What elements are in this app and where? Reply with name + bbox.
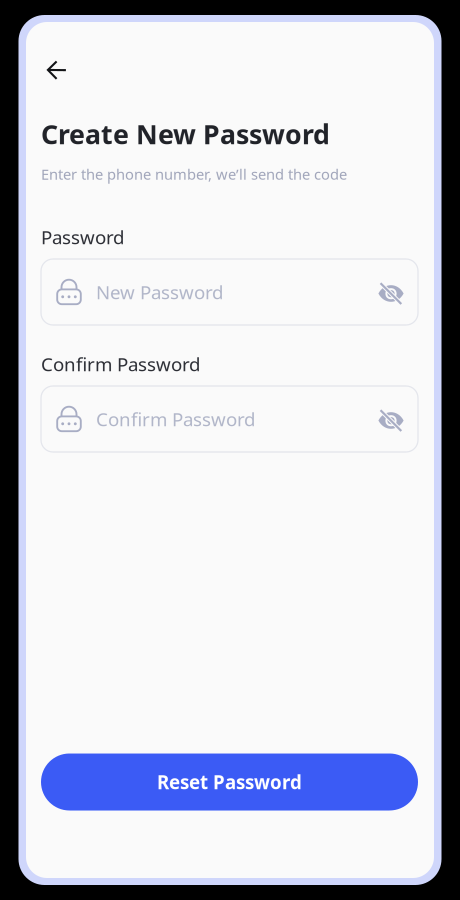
button[interactable]: Confirm Password [41, 386, 418, 452]
staticText: Create New Password [41, 116, 330, 152]
button[interactable]: New Password [41, 259, 418, 325]
button[interactable]: Reset Password [41, 753, 418, 810]
staticText: Enter the phone number, we’ll send the c… [41, 164, 347, 184]
button[interactable]: Show password [369, 397, 413, 441]
staticText: Reset Password [157, 770, 302, 794]
button[interactable]: Back [47, 48, 91, 92]
staticText: Password [41, 225, 124, 249]
staticText: Confirm Password [41, 352, 200, 376]
button[interactable]: Show password [369, 270, 413, 314]
staticText: Confirm Password [96, 407, 255, 431]
staticText: New Password [96, 280, 223, 304]
